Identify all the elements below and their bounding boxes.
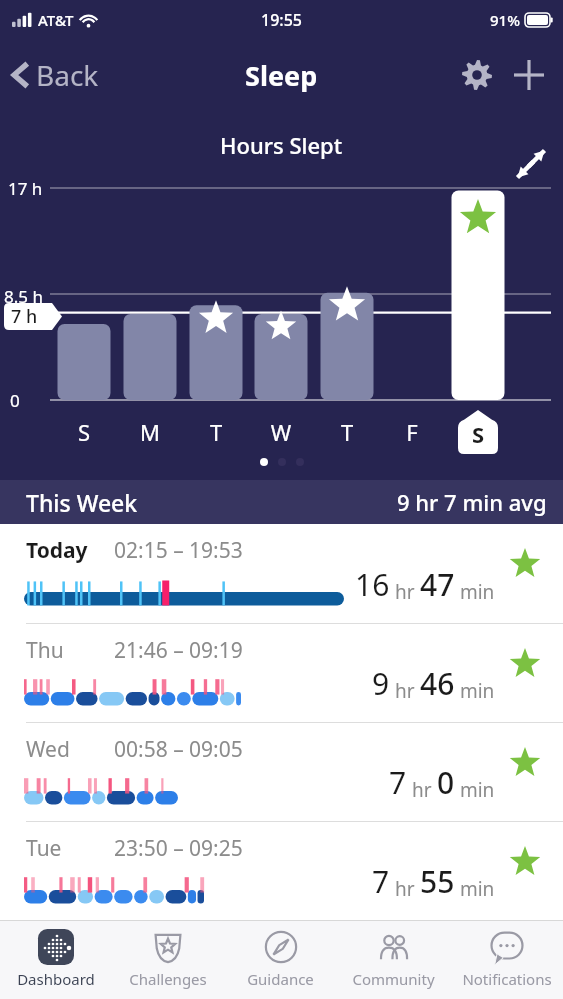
staticText: 8.5 h: [4, 285, 43, 308]
staticText: 00:58 – 09:05: [114, 735, 243, 764]
staticText: 91%: [490, 10, 520, 30]
staticText: 7 h: [11, 304, 38, 329]
staticText: hr: [390, 678, 420, 704]
button[interactable]: Thu: [0, 624, 563, 722]
staticText: Back: [36, 56, 99, 94]
button[interactable]: Guidance: [224, 921, 337, 999]
button[interactable]: Wed: [0, 723, 563, 821]
staticText: AT&T: [38, 10, 74, 30]
button[interactable]: Community: [337, 921, 450, 999]
staticText: 7: [389, 762, 407, 803]
staticText: This Week: [26, 487, 138, 518]
staticText: Today: [26, 536, 114, 565]
staticText: 21:46 – 09:19: [114, 636, 243, 665]
staticText: min: [455, 678, 495, 704]
staticText: 55: [420, 861, 455, 902]
staticText: 16: [355, 564, 390, 605]
staticText: T: [204, 417, 228, 447]
staticText: M: [138, 417, 162, 447]
staticText: S: [472, 419, 485, 449]
staticText: Guidance: [247, 969, 314, 989]
staticText: 46: [420, 663, 455, 704]
staticText: min: [455, 579, 495, 605]
staticText: hr: [390, 876, 420, 902]
staticText: 9: [372, 663, 390, 704]
button[interactable]: Add: [503, 49, 555, 101]
button[interactable]: Expand chart: [509, 142, 553, 186]
staticText: 17 h: [8, 177, 43, 200]
button[interactable]: Notifications: [450, 921, 563, 999]
staticText: hr: [390, 579, 420, 605]
staticText: T: [335, 417, 359, 447]
staticText: 02:15 – 19:53: [114, 536, 243, 565]
staticText: min: [455, 777, 495, 803]
staticText: min: [455, 876, 495, 902]
button[interactable]: Today: [0, 524, 563, 623]
staticText: 7: [372, 861, 390, 902]
button[interactable]: Back: [0, 50, 111, 100]
staticText: 0: [437, 762, 455, 803]
staticText: hr: [407, 777, 437, 803]
staticText: Notifications: [462, 969, 552, 989]
staticText: 47: [420, 564, 455, 605]
staticText: Wed: [26, 735, 114, 764]
staticText: Sleep: [245, 57, 318, 94]
staticText: Challenges: [129, 969, 207, 989]
staticText: 23:50 – 09:25: [114, 834, 243, 863]
button[interactable]: Challenges: [112, 921, 224, 999]
staticText: Hours Slept: [220, 130, 343, 160]
staticText: Community: [352, 969, 435, 989]
staticText: 0: [10, 389, 20, 412]
staticText: 19:55: [261, 9, 302, 31]
staticText: W: [269, 417, 293, 447]
staticText: Tue: [26, 834, 114, 863]
staticText: 9 hr 7 min avg: [397, 487, 547, 517]
staticText: Thu: [26, 636, 114, 665]
staticText: F: [400, 417, 424, 447]
staticText: Dashboard: [17, 969, 95, 989]
staticText: S: [72, 417, 96, 447]
button[interactable]: Tue: [0, 822, 563, 920]
button[interactable]: Settings: [451, 49, 503, 101]
button[interactable]: Dashboard: [0, 921, 112, 999]
